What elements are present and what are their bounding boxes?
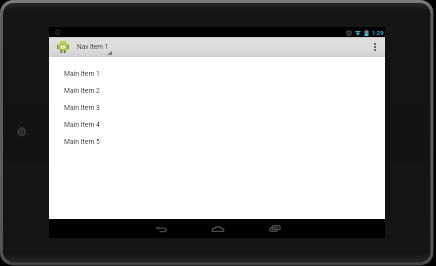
staticText: Main Item 2: [64, 87, 100, 95]
button[interactable]: Nav Item 1: [49, 37, 121, 57]
button[interactable]: More options: [364, 37, 385, 57]
button[interactable]: Main Item 5: [49, 133, 385, 150]
button[interactable]: Main Item 2: [49, 82, 385, 99]
staticText: 1:29: [372, 29, 384, 36]
button[interactable]: Recents: [256, 219, 293, 238]
staticText: Main Item 1: [64, 70, 100, 78]
button[interactable]: Main Item 3: [49, 99, 385, 116]
button[interactable]: Home: [199, 219, 236, 238]
staticText: Main Item 3: [64, 104, 100, 112]
staticText: Nav Item 1: [77, 43, 109, 51]
button[interactable]: Main Item 1: [49, 65, 385, 82]
staticText: Main Item 4: [64, 121, 100, 129]
button[interactable]: Main Item 4: [49, 116, 385, 133]
button[interactable]: Back: [143, 219, 180, 238]
staticText: Main Item 5: [64, 138, 100, 146]
